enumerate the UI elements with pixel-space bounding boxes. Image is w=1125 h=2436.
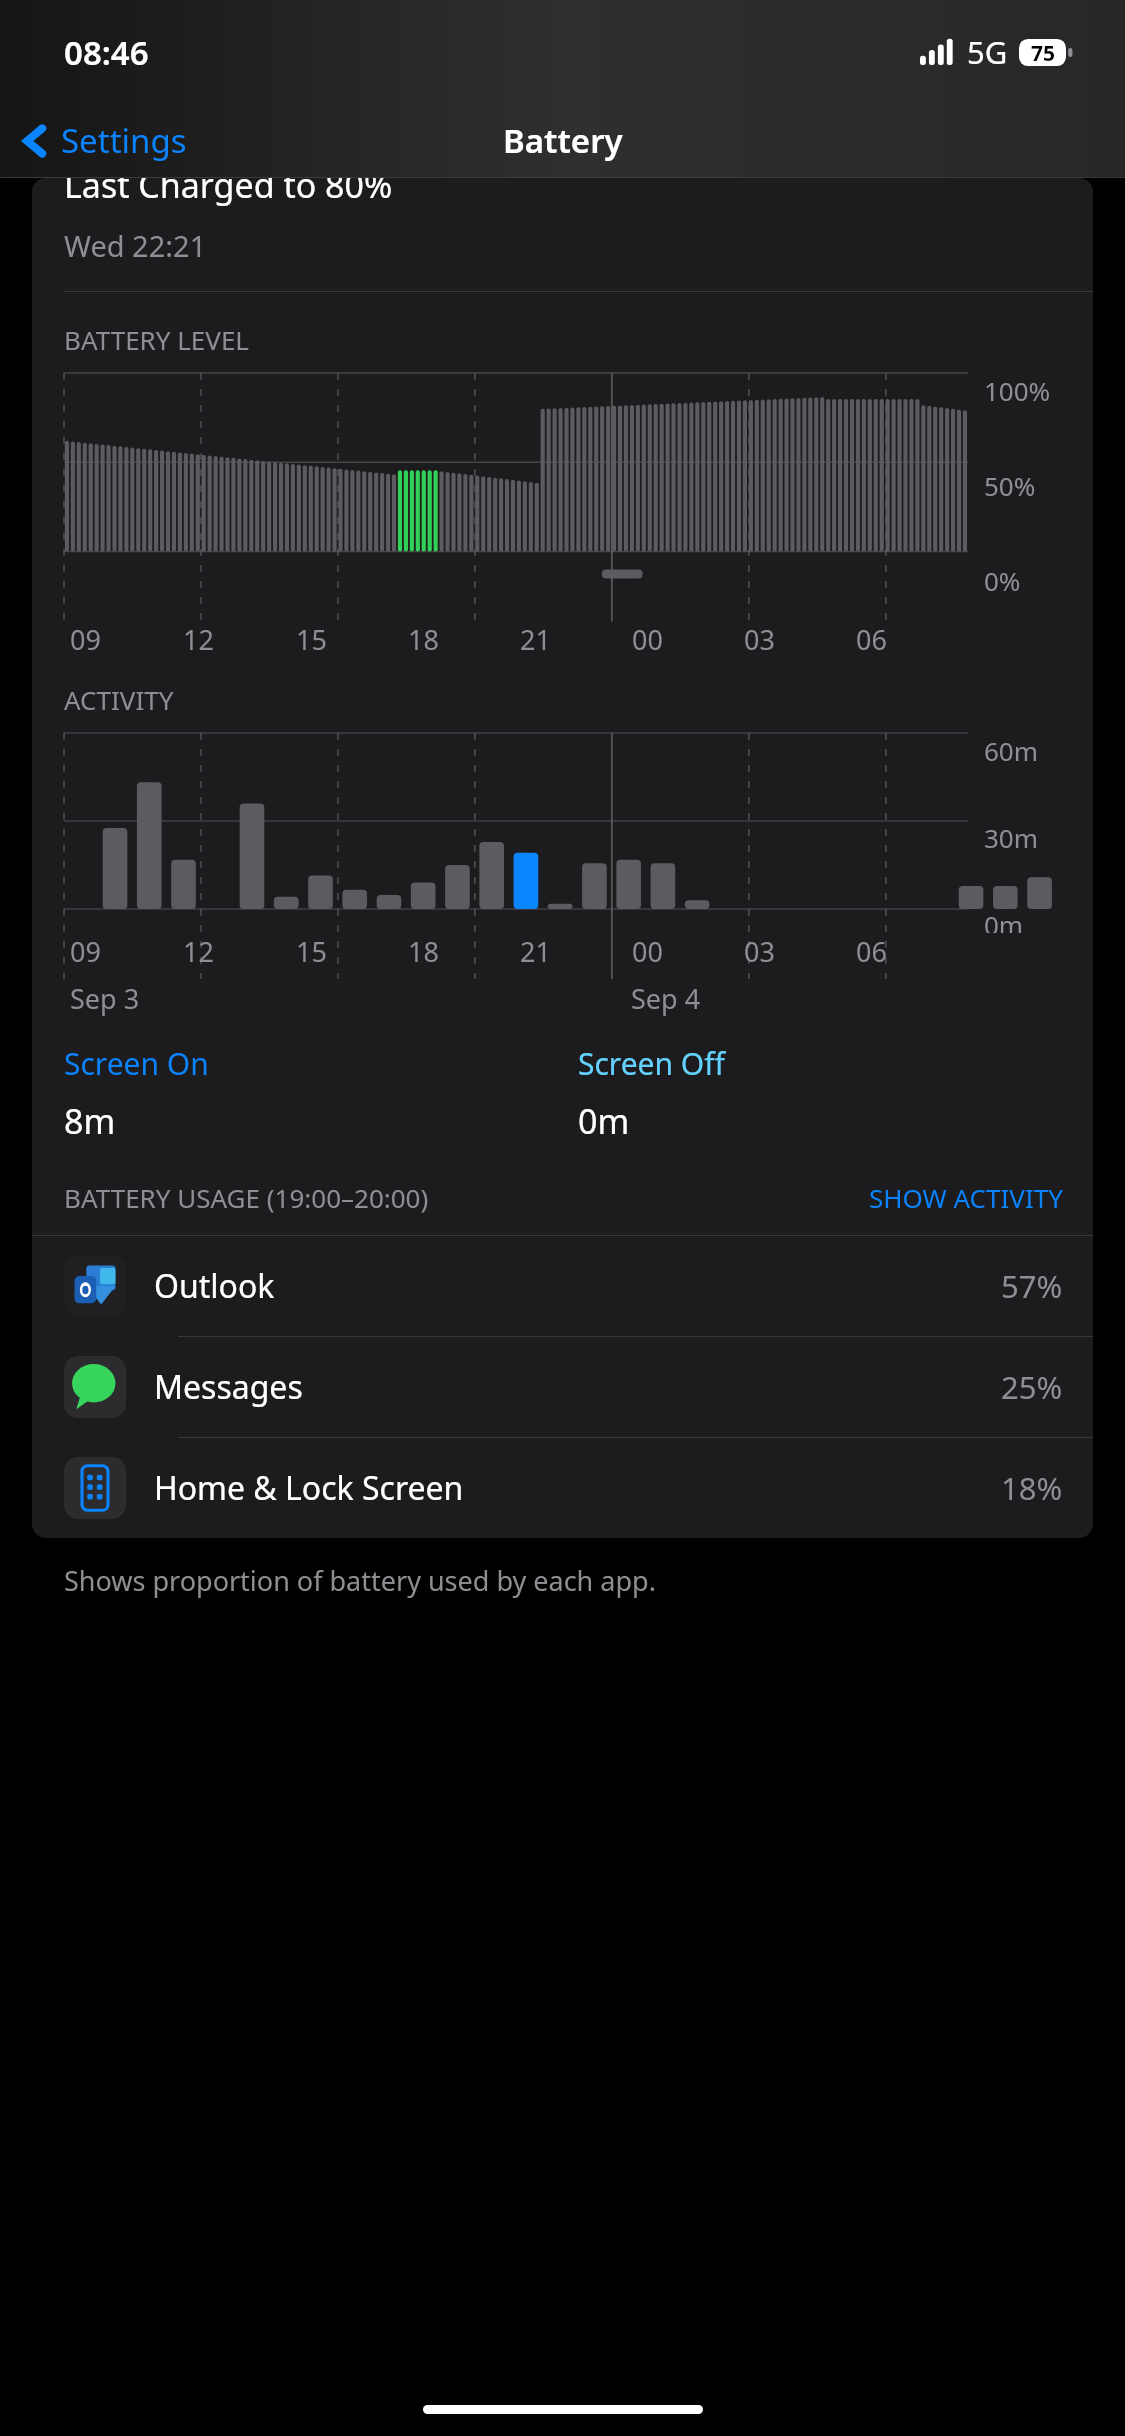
staticText: Screen Off: [578, 1043, 725, 1084]
staticText: 03: [744, 621, 775, 658]
staticText: 0%: [984, 563, 1021, 598]
staticText: 15: [296, 933, 327, 970]
staticText: 09: [70, 933, 101, 970]
staticText: 25%: [1001, 1366, 1063, 1408]
button[interactable]: Outlook: [32, 1236, 1093, 1336]
staticText: 8m: [64, 1098, 116, 1144]
staticText: ACTIVITY: [64, 682, 174, 717]
staticText: 06: [856, 933, 887, 970]
button[interactable]: Back: [16, 108, 193, 173]
button[interactable]: Home & Lock Screen: [32, 1438, 1093, 1538]
staticText: SHOW ACTIVITY: [869, 1180, 1063, 1215]
staticText: 0m: [984, 907, 1024, 933]
staticText: 18%: [1001, 1467, 1063, 1509]
button[interactable]: Messages: [32, 1337, 1093, 1437]
staticText: 12: [183, 621, 214, 658]
staticText: Outlook: [154, 1264, 1001, 1308]
staticText: Wed 22:21: [64, 226, 207, 265]
other: Back: [22, 120, 48, 162]
staticText: 0m: [578, 1098, 630, 1144]
staticText: 21: [520, 933, 551, 970]
staticText: 15: [296, 621, 327, 658]
staticText: Screen On: [64, 1043, 209, 1084]
staticText: 18: [408, 933, 439, 970]
staticText: 18: [408, 621, 439, 658]
staticText: Shows proportion of battery used by each…: [64, 1562, 656, 1599]
staticText: BATTERY LEVEL: [64, 322, 249, 357]
staticText: 09: [70, 621, 101, 658]
staticText: Home & Lock Screen: [154, 1466, 1001, 1510]
staticText: 12: [183, 933, 214, 970]
staticText: 00: [632, 933, 663, 970]
staticText: 30m: [984, 820, 1039, 855]
staticText: Battery: [503, 118, 623, 163]
staticText: 00: [632, 621, 663, 658]
staticText: Sep 3: [70, 980, 140, 1017]
staticText: 5G: [967, 31, 1008, 73]
staticText: Sep 4: [631, 980, 701, 1017]
staticText: 03: [744, 933, 775, 970]
staticText: BATTERY USAGE (19:00–20:00): [64, 1180, 869, 1215]
button[interactable]: SHOW ACTIVITY: [869, 1180, 1063, 1215]
staticText: 75: [1031, 39, 1056, 66]
staticText: 50%: [984, 468, 1036, 503]
staticText: 21: [520, 621, 551, 658]
staticText: 06: [856, 621, 887, 658]
staticText: Messages: [154, 1365, 1001, 1409]
staticText: 57%: [1001, 1265, 1063, 1307]
staticText: Last Charged to 80%: [64, 178, 393, 208]
staticText: 08:46: [64, 30, 149, 75]
staticText: 100%: [984, 373, 1051, 408]
staticText: 60m: [984, 733, 1039, 768]
staticText: Settings: [61, 118, 187, 163]
